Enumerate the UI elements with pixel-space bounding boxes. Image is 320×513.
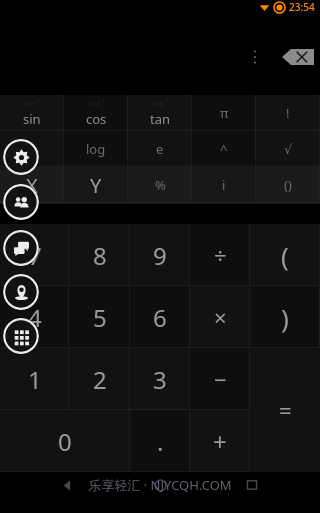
staticText: 0 (58, 425, 72, 458)
button[interactable]: Messages (3, 230, 39, 266)
button[interactable]: − (190, 348, 250, 410)
staticText: % (155, 176, 166, 194)
staticText: = (279, 395, 292, 425)
staticText: 乐享轻汇 · NJYCQH.COM (88, 476, 232, 494)
staticText: Y (90, 172, 102, 199)
staticText: 2 (93, 363, 107, 396)
staticText: ÷ (214, 240, 227, 270)
button[interactable]: i (192, 167, 256, 203)
button[interactable]: Delete (282, 49, 314, 65)
button[interactable]: ^ (192, 131, 256, 167)
staticText: ln (26, 140, 38, 158)
staticText: tan⁻¹ (153, 99, 169, 109)
staticText: e (156, 140, 164, 158)
button[interactable]: 5 (69, 286, 130, 348)
staticText: √ (284, 142, 293, 157)
staticText: log (86, 140, 106, 158)
button[interactable]: log (64, 131, 128, 167)
button[interactable]: Y (64, 167, 128, 203)
button[interactable]: ln (0, 131, 64, 167)
staticText: . (157, 425, 164, 458)
button[interactable]: tan⁻¹ (128, 95, 192, 131)
button[interactable]: % (128, 167, 192, 203)
staticText: 23:54 (289, 0, 315, 14)
staticText: 4 (28, 301, 42, 334)
staticText: i (222, 176, 226, 194)
button[interactable]: 7 (0, 224, 69, 286)
staticText: ! (286, 104, 290, 122)
staticText: () (284, 176, 292, 194)
staticText: 8 (93, 239, 107, 272)
button[interactable]: e (128, 131, 192, 167)
button[interactable]: 2 (69, 348, 130, 410)
button[interactable]: Settings (3, 139, 39, 175)
button[interactable]: Recents (229, 472, 275, 498)
button[interactable]: 6 (130, 286, 190, 348)
button[interactable]: cos⁻¹ (64, 95, 128, 131)
staticText: ^ (220, 140, 228, 158)
staticText: X (26, 172, 38, 199)
button[interactable]: ÷ (190, 224, 250, 286)
button[interactable]: Back (46, 472, 92, 498)
button[interactable]: + (190, 410, 250, 472)
button[interactable]: sin⁻¹ (0, 95, 64, 131)
staticText: × (214, 302, 227, 332)
button[interactable]: Maps (3, 274, 39, 310)
button[interactable]: Home (137, 472, 183, 498)
button[interactable]: . (130, 410, 190, 472)
button[interactable]: π (192, 95, 256, 131)
staticText: sin (23, 110, 41, 128)
button[interactable]: = (250, 348, 320, 472)
staticText: π (220, 104, 229, 122)
button[interactable]: ( (250, 224, 320, 286)
staticText: sin⁻¹ (25, 99, 40, 109)
staticText: tan (150, 110, 171, 128)
staticText: cos⁻¹ (89, 99, 105, 109)
staticText: 9 (153, 239, 167, 272)
button[interactable]: 8 (69, 224, 130, 286)
staticText: + (213, 425, 227, 458)
staticText: 7 (28, 239, 42, 272)
button[interactable]: × (190, 286, 250, 348)
staticText: 6 (153, 301, 167, 334)
button[interactable]: 0 (0, 410, 130, 472)
button[interactable]: All apps (3, 318, 39, 354)
staticText: cos (86, 110, 107, 128)
button[interactable]: ) (250, 286, 320, 348)
button[interactable]: 1 (0, 348, 69, 410)
staticText: 1 (28, 363, 42, 396)
button[interactable]: () (256, 167, 320, 203)
staticText: 3 (153, 363, 167, 396)
button[interactable]: √ (256, 131, 320, 167)
staticText: ) (281, 300, 289, 335)
staticText: ( (281, 238, 289, 273)
button[interactable]: 3 (130, 348, 190, 410)
button[interactable]: ! (256, 95, 320, 131)
button[interactable]: More options (244, 44, 266, 70)
button[interactable]: 4 (0, 286, 69, 348)
button[interactable]: 9 (130, 224, 190, 286)
staticText: − (214, 364, 227, 394)
button[interactable]: X (0, 167, 64, 203)
button[interactable]: Contacts (3, 184, 39, 220)
staticText: 5 (93, 301, 107, 334)
